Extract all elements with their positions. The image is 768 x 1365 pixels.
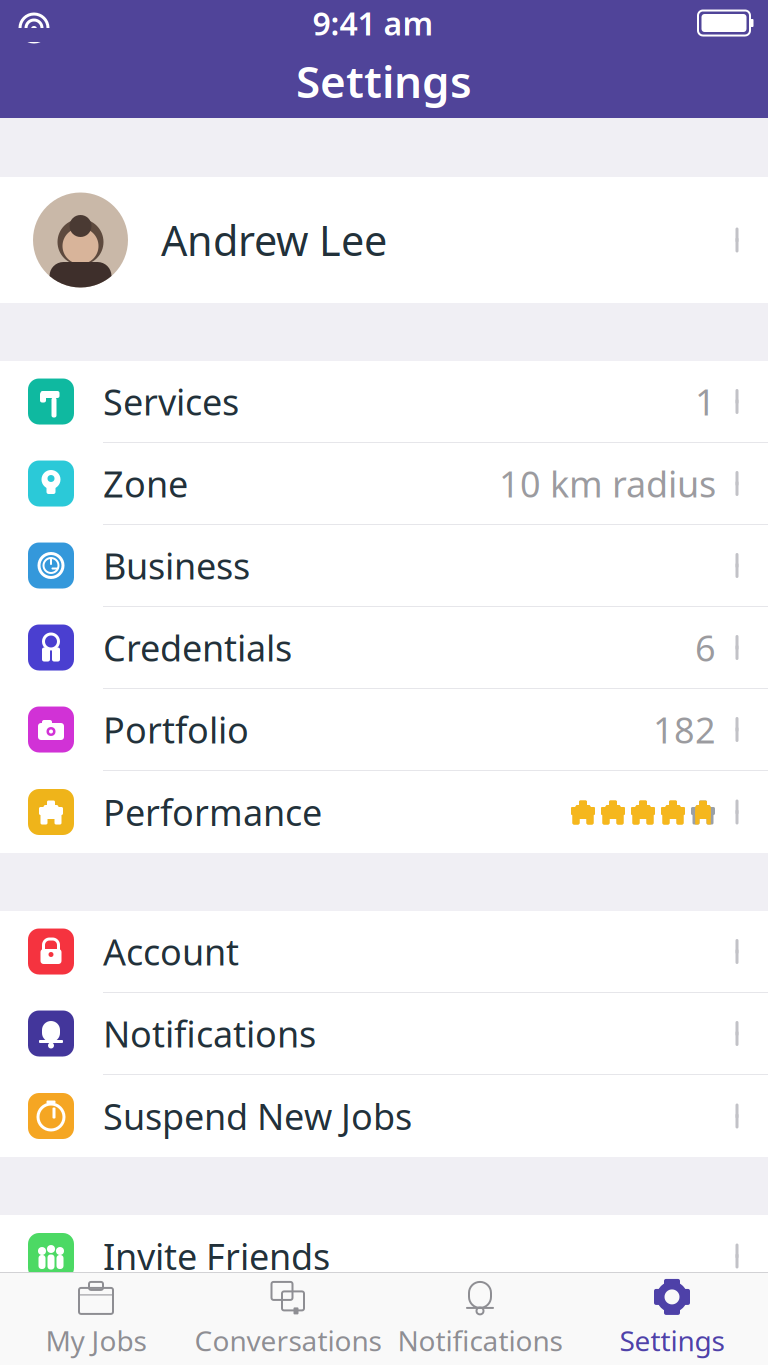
staticText: Notifications — [103, 1010, 316, 1057]
button[interactable]: Notifications — [0, 993, 768, 1075]
button[interactable]: Account — [0, 911, 768, 993]
button[interactable]: Invite Friends — [0, 1215, 768, 1297]
staticText: Services — [103, 378, 239, 425]
button[interactable]: Zone — [0, 443, 768, 525]
staticText: Settings — [296, 52, 472, 110]
staticText: 9:41 am — [312, 2, 433, 44]
staticText: Business — [103, 542, 250, 589]
button[interactable]: Services — [0, 361, 768, 443]
button[interactable]: My Jobs — [0, 1273, 192, 1365]
staticText: Portfolio — [103, 706, 249, 753]
button[interactable]: Credentials — [0, 607, 768, 689]
staticText: 182 — [653, 706, 716, 753]
staticText: Zone — [103, 460, 188, 507]
staticText: 10 km radius — [499, 460, 716, 507]
staticText: Credentials — [103, 624, 292, 671]
staticText: Invite Friends — [103, 1232, 330, 1280]
staticText: My Jobs — [45, 1322, 146, 1359]
button[interactable]: Settings — [576, 1273, 768, 1365]
staticText: Andrew Lee — [161, 213, 387, 267]
button[interactable]: Suspend New Jobs — [0, 1075, 768, 1157]
staticText: Notifications — [397, 1322, 562, 1359]
button[interactable]: Andrew Lee — [0, 177, 768, 303]
button[interactable]: Conversations — [192, 1273, 384, 1365]
staticText: Suspend New Jobs — [103, 1092, 412, 1140]
button[interactable]: Business — [0, 525, 768, 607]
staticText: 6 — [695, 624, 716, 671]
staticText: Settings — [619, 1322, 724, 1359]
button[interactable]: Portfolio — [0, 689, 768, 771]
staticText: Conversations — [194, 1322, 381, 1359]
button[interactable]: Performance — [0, 771, 768, 853]
staticText: Account — [103, 928, 239, 975]
staticText: Performance — [103, 788, 322, 836]
button[interactable]: Notifications — [384, 1273, 576, 1365]
staticText: 1 — [695, 378, 716, 425]
